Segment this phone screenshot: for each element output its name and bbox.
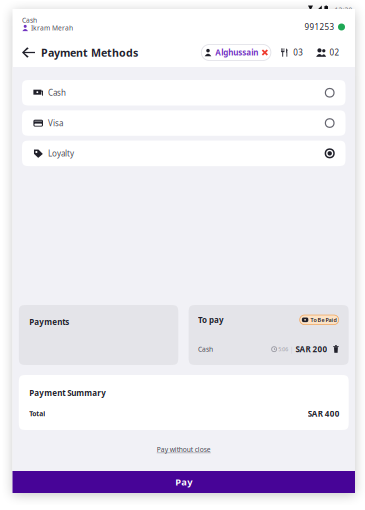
staticText: Loyalty [48, 148, 74, 159]
staticText: Cash [22, 16, 37, 25]
staticText: To Be Paid [310, 316, 336, 323]
staticText: To pay [198, 314, 224, 325]
staticText: 12:30 [335, 5, 353, 14]
button[interactable]: Pay [12, 471, 355, 493]
staticText: Payments [29, 316, 69, 327]
staticText: | [290, 345, 294, 354]
staticText: 991253 [304, 22, 334, 32]
staticText: Cash [198, 345, 213, 354]
staticText: Total [29, 409, 45, 418]
staticText: Visa [48, 118, 63, 128]
staticText: 03 [293, 47, 303, 58]
staticText: Payment Summary [29, 387, 106, 398]
button[interactable]: Guests [303, 44, 339, 61]
staticText: SAR 200 [295, 344, 327, 354]
button[interactable]: Pay without close [12, 440, 355, 459]
button[interactable]: Cash [22, 80, 345, 105]
button[interactable]: Loyalty [22, 141, 345, 166]
staticText: SAR 400 [308, 408, 340, 419]
staticText: 02 [329, 47, 339, 58]
staticText: Ikram Merah [31, 23, 73, 32]
staticText: Payment Methods [41, 45, 138, 60]
staticText: Alghussain [215, 47, 258, 58]
button[interactable]: Alghussain [201, 44, 271, 60]
staticText: 5:06 [278, 346, 288, 353]
button[interactable]: Visa [22, 110, 345, 136]
staticText: Pay without close [157, 445, 211, 454]
button[interactable]: Back [22, 44, 41, 61]
staticText: Cash [48, 87, 66, 98]
staticText: Pay [175, 476, 192, 488]
button[interactable]: Courses [271, 44, 303, 61]
